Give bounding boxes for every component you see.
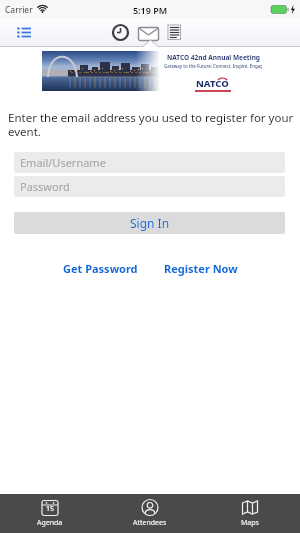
staticText: Get Password	[63, 261, 138, 276]
staticText: Agenda	[37, 518, 63, 528]
staticText: Password	[20, 179, 70, 194]
button[interactable]: Sign In	[14, 212, 285, 234]
button[interactable]: Maps	[200, 494, 300, 533]
staticText: NATCO 42nd Annual Meeting	[167, 53, 260, 62]
staticText: Sign In	[130, 215, 170, 231]
staticText: Email/Username	[20, 155, 106, 170]
button[interactable]	[138, 27, 160, 41]
staticText: Gateway to the Future: Connect. Inspire.…	[164, 63, 262, 69]
button[interactable]	[17, 27, 32, 38]
button[interactable]: Register Now	[156, 258, 246, 278]
button[interactable]: Attendees	[100, 494, 200, 533]
button[interactable]: 15	[0, 494, 100, 533]
staticText: NATCO	[196, 77, 229, 90]
button[interactable]	[112, 24, 129, 41]
staticText: Register Now	[164, 261, 238, 276]
staticText: Enter the email address you used to regi…	[8, 110, 294, 139]
staticText: Carrier	[5, 4, 33, 16]
staticText: 5:19 PM	[0, 4, 300, 16]
staticText: Attendees	[133, 518, 167, 528]
button[interactable]: Get Password	[55, 258, 145, 278]
staticText: 15	[46, 504, 55, 514]
button[interactable]	[168, 25, 182, 40]
staticText: Maps	[241, 518, 259, 528]
